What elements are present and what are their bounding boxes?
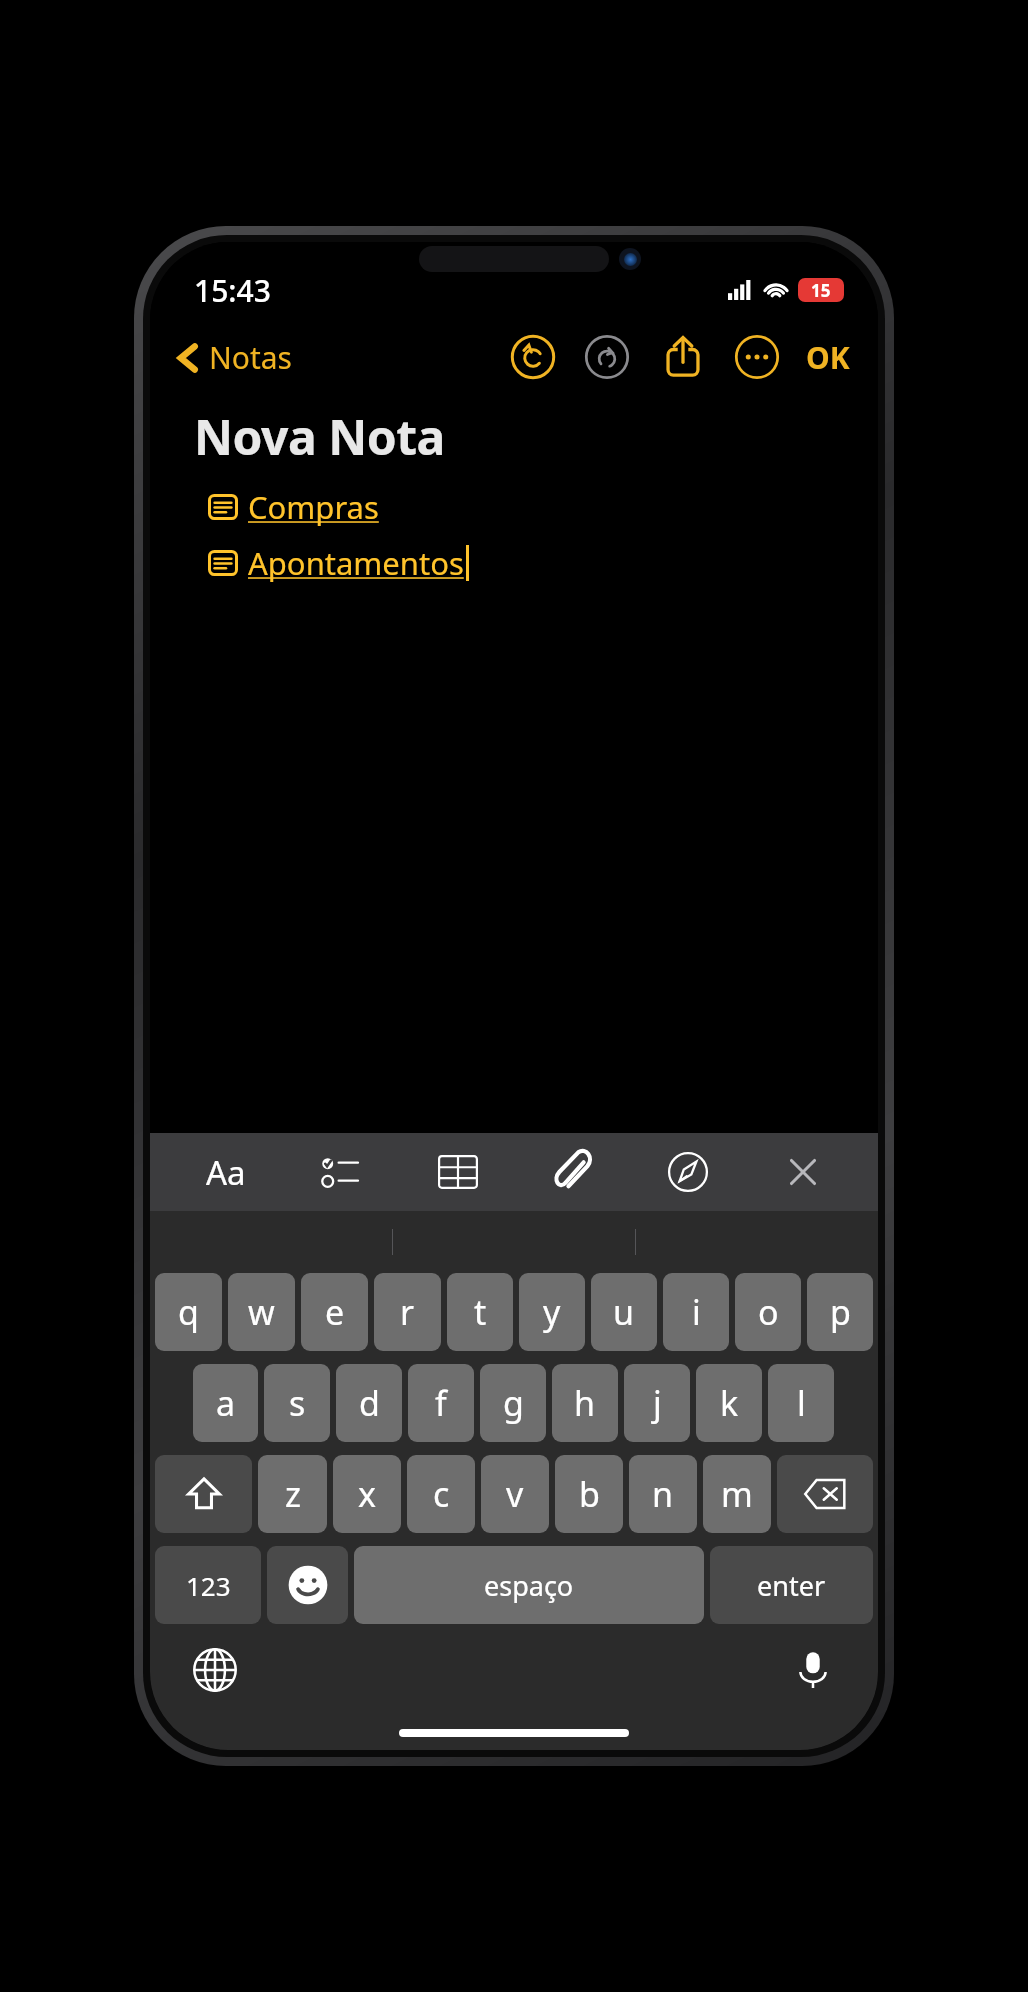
button[interactable]: enter [710, 1546, 873, 1624]
staticText: Nova Nota [194, 404, 445, 469]
staticText: f [435, 1380, 447, 1426]
button[interactable]: q [155, 1273, 222, 1351]
staticText: i [692, 1289, 701, 1335]
staticText: d [359, 1380, 380, 1426]
button[interactable]: Apontamentos [194, 539, 469, 587]
staticText: v [506, 1471, 524, 1517]
button[interactable]: Undo [506, 330, 560, 384]
button[interactable]: 123 [155, 1546, 261, 1624]
button[interactable]: r [374, 1273, 441, 1351]
button[interactable]: Share [656, 330, 710, 384]
staticText: l [797, 1380, 806, 1426]
staticText: espaço [484, 1567, 574, 1604]
staticText: k [720, 1380, 739, 1426]
button[interactable]: f [408, 1364, 474, 1442]
button[interactable]: k [696, 1364, 762, 1442]
staticText: p [830, 1289, 851, 1335]
staticText: n [652, 1471, 674, 1517]
button[interactable]: Voice input [782, 1639, 844, 1701]
button[interactable]: Emoji [267, 1546, 348, 1624]
button[interactable]: c [407, 1455, 475, 1533]
button[interactable]: w [228, 1273, 295, 1351]
button[interactable]: Table [400, 1133, 515, 1211]
staticText: h [574, 1380, 596, 1426]
button[interactable]: Shift [155, 1455, 252, 1533]
staticText: b [579, 1471, 600, 1517]
button[interactable]: o [735, 1273, 801, 1351]
button[interactable]: s [264, 1364, 330, 1442]
button[interactable]: espaço [354, 1546, 704, 1624]
button[interactable]: Text format [168, 1133, 284, 1211]
button[interactable]: More options [730, 330, 784, 384]
button[interactable]: v [481, 1455, 549, 1533]
staticText: u [613, 1289, 635, 1335]
button[interactable]: Markup [630, 1133, 745, 1211]
button[interactable]: d [336, 1364, 402, 1442]
staticText: a [216, 1380, 236, 1426]
staticText: 15 [811, 279, 831, 302]
staticText: y [543, 1289, 561, 1335]
button[interactable]: Compras [194, 483, 379, 531]
button[interactable]: l [768, 1364, 834, 1442]
button[interactable]: y [519, 1273, 585, 1351]
staticText: Compras [248, 486, 379, 528]
button[interactable]: Close keyboard [745, 1133, 860, 1211]
button[interactable]: Attach [515, 1133, 630, 1211]
staticText: r [400, 1289, 415, 1335]
staticText: 15:43 [194, 270, 271, 311]
button[interactable]: h [552, 1364, 618, 1442]
button[interactable]: Checklist [284, 1133, 400, 1211]
staticText: Apontamentos [248, 542, 464, 584]
staticText: Notas [209, 337, 292, 378]
button[interactable]: b [555, 1455, 623, 1533]
button[interactable]: n [629, 1455, 697, 1533]
button[interactable]: m [703, 1455, 771, 1533]
button[interactable]: i [663, 1273, 729, 1351]
staticText: z [285, 1471, 301, 1517]
staticText: t [474, 1289, 487, 1335]
staticText: x [358, 1471, 376, 1517]
button[interactable]: g [480, 1364, 546, 1442]
staticText: Aa [206, 1150, 246, 1195]
staticText: OK [806, 337, 850, 378]
staticText: q [178, 1289, 199, 1335]
button[interactable]: z [258, 1455, 327, 1533]
button[interactable]: Redo [580, 330, 634, 384]
button[interactable]: t [447, 1273, 513, 1351]
staticText: 123 [186, 1568, 231, 1603]
staticText: e [325, 1289, 345, 1335]
button[interactable]: x [333, 1455, 401, 1533]
button[interactable]: a [193, 1364, 258, 1442]
button[interactable]: Change language [184, 1639, 246, 1701]
button[interactable]: Backspace [777, 1455, 873, 1533]
staticText: o [758, 1289, 779, 1335]
staticText: c [433, 1471, 450, 1517]
button[interactable]: Notas [172, 333, 296, 382]
staticText: g [503, 1380, 524, 1426]
staticText: s [289, 1380, 306, 1426]
button[interactable]: p [807, 1273, 873, 1351]
button[interactable]: e [301, 1273, 368, 1351]
staticText: m [721, 1471, 753, 1517]
button[interactable]: j [624, 1364, 690, 1442]
button[interactable]: u [591, 1273, 657, 1351]
staticText: j [653, 1380, 662, 1426]
staticText: w [248, 1289, 275, 1335]
button[interactable]: OK [800, 331, 856, 384]
staticText: enter [757, 1567, 826, 1604]
